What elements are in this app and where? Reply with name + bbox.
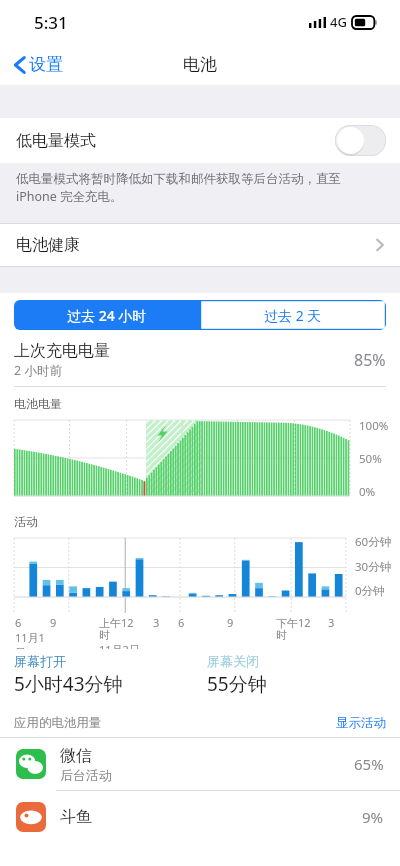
staticText: 4G	[330, 13, 347, 31]
staticText: 上次充电电量	[14, 341, 110, 361]
staticText: 60分钟	[355, 534, 392, 550]
staticText: 斗鱼	[60, 807, 92, 827]
staticText: 低电量模式	[16, 131, 96, 151]
staticText: 电池健康	[16, 235, 80, 255]
staticText: 0%	[359, 484, 376, 500]
staticText: 设置	[29, 54, 63, 75]
staticText: 活动	[14, 514, 38, 529]
staticText: 85%	[354, 349, 386, 371]
staticText: 50%	[359, 451, 382, 467]
staticText: 55分钟	[207, 671, 267, 697]
staticText: 上午12 时	[99, 615, 134, 642]
button[interactable]: 斗鱼	[0, 791, 400, 843]
staticText: 低电量模式将暂时降低如下载和邮件获取等后台活动，直至 iPhone 完全充电。	[16, 170, 384, 205]
staticText: 100%	[359, 418, 389, 434]
staticText: 屏幕关闭	[207, 653, 259, 669]
staticText: 9	[227, 615, 234, 630]
staticText: 0分钟	[355, 583, 385, 599]
staticText: 6	[178, 615, 185, 630]
button[interactable]: 过去 2 天	[200, 300, 386, 330]
staticText: 5小时43分钟	[14, 671, 123, 697]
staticText: 后台活动	[60, 767, 112, 783]
button[interactable]: 电池健康	[0, 224, 400, 266]
staticText: 6	[15, 615, 22, 630]
staticText: 屏幕打开	[14, 653, 66, 669]
staticText: 下午12 时	[276, 615, 311, 642]
button[interactable]: 微信	[0, 738, 400, 790]
staticText: 65%	[354, 754, 384, 774]
staticText: 9%	[362, 807, 384, 827]
button[interactable]: Low Power Mode toggle	[335, 125, 386, 156]
button[interactable]: 过去 24 小时	[14, 300, 200, 330]
staticText: 3	[328, 615, 335, 630]
staticText: 应用的电池用量	[14, 715, 102, 731]
staticText: 过去 24 小时	[67, 306, 147, 325]
staticText: 微信	[60, 746, 92, 766]
button[interactable]: 低电量模式	[0, 118, 400, 163]
staticText: 11月2日	[99, 642, 140, 649]
staticText: 3	[153, 615, 160, 630]
staticText: 电池电量	[14, 396, 62, 411]
staticText: 5:31	[34, 11, 68, 34]
staticText: 9	[50, 615, 57, 630]
staticText: 过去 2 天	[264, 306, 322, 325]
button[interactable]: 显示活动	[336, 715, 386, 731]
staticText: 30分钟	[355, 559, 392, 575]
staticText: 11月1日	[15, 630, 50, 649]
staticText: 电池	[183, 54, 217, 75]
staticText: 显示活动	[336, 715, 386, 731]
staticText: 2 小时前	[14, 362, 62, 379]
button[interactable]: 设置	[10, 50, 67, 79]
